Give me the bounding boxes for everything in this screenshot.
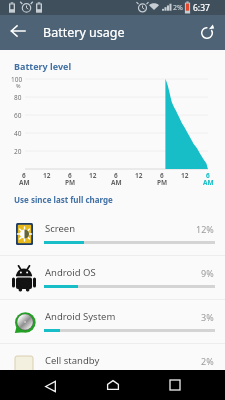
staticText: 6 [206,171,210,180]
staticText: Android OS [45,266,96,279]
staticText: 2% [173,3,183,13]
staticText: 3% [201,311,214,323]
staticText: 6 [68,171,72,180]
button[interactable]: Cell standby [0,344,225,388]
staticText: Battery level [14,60,72,72]
staticText: 60 [14,111,22,120]
staticText: 20 [14,147,22,156]
staticText: PM [65,178,76,187]
button[interactable]: Refresh [191,17,223,49]
staticText: Android System [45,310,116,323]
staticText: AM [203,178,214,187]
staticText: 6 [22,171,26,180]
staticText: 12 [135,171,143,180]
staticText: PM [157,178,168,187]
staticText: Screen [45,222,76,235]
staticText: Cell standby [45,354,100,367]
button[interactable]: Home [98,370,128,400]
staticText: 12 [181,171,189,180]
button[interactable]: Screen [0,212,225,256]
staticText: 12 [43,171,51,180]
staticText: AM [111,178,122,187]
staticText: 9% [201,267,214,279]
staticText: 6 [160,171,164,180]
staticText: AM [19,178,30,187]
staticText: % [16,82,21,89]
staticText: Battery usage [43,24,125,41]
staticText: 6 [114,171,118,180]
button[interactable]: Android System [0,300,225,344]
button[interactable]: Android OS [0,256,225,300]
staticText: 2% [201,355,214,367]
button[interactable]: Navigate up [2,15,34,47]
staticText: 40 [14,129,22,138]
staticText: 80 [14,93,22,102]
staticText: Use since last full charge [14,194,113,205]
button[interactable]: Back [35,371,65,400]
staticText: 12 [89,171,97,180]
staticText: 12% [196,223,214,235]
button[interactable]: Recent apps [160,370,190,400]
staticText: 100 [11,75,23,84]
staticText: 6:37 [193,2,210,14]
